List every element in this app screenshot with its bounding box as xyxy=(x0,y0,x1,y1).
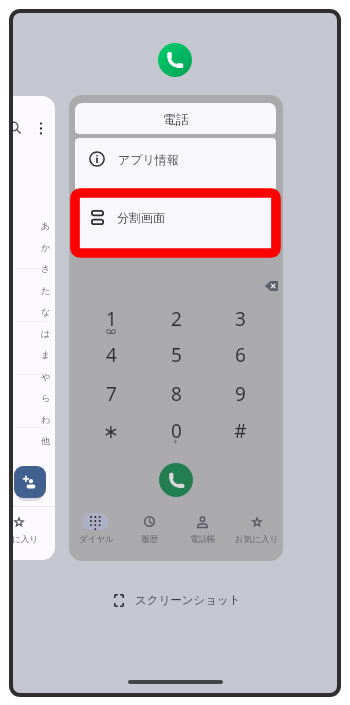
button[interactable]: スクリーンショット xyxy=(114,593,241,607)
staticText: 電話 xyxy=(163,111,189,127)
staticText: ら xyxy=(41,392,51,403)
button[interactable]: 3 xyxy=(216,301,264,337)
other: More options xyxy=(37,122,45,135)
staticText: 他 xyxy=(41,435,50,446)
staticText: 3 xyxy=(235,306,246,332)
staticText: に入り xyxy=(13,534,38,545)
button[interactable]: ∗ xyxy=(87,413,135,449)
staticText: アプリ情報 xyxy=(118,152,179,167)
staticText: 電話帳 xyxy=(190,534,216,545)
staticText: 1 xyxy=(106,306,117,332)
other: Search xyxy=(13,121,21,134)
button[interactable]: 6 xyxy=(216,337,264,373)
button[interactable]: Phone app xyxy=(158,43,192,77)
staticText: ダイヤル xyxy=(79,534,114,545)
button[interactable]: 4 xyxy=(87,337,135,373)
staticText: 6 xyxy=(235,342,246,368)
button[interactable] xyxy=(70,511,122,545)
staticText: ∗ xyxy=(103,420,119,442)
staticText: スクリーンショット xyxy=(135,593,241,607)
staticText: + xyxy=(173,436,178,447)
other: Backspace xyxy=(265,281,278,291)
staticText: 履歴 xyxy=(141,534,158,545)
button[interactable]: アプリ情報 xyxy=(75,138,276,191)
staticText: な xyxy=(41,306,51,317)
button[interactable]: # xyxy=(216,413,264,449)
staticText: 0 xyxy=(171,418,182,444)
button[interactable]: 7 xyxy=(87,376,135,412)
staticText: あ xyxy=(41,220,51,231)
staticText: か xyxy=(41,242,51,253)
staticText: 2 xyxy=(171,306,182,332)
staticText: # xyxy=(234,418,247,444)
staticText: 4 xyxy=(106,342,117,368)
staticText: お気に入り xyxy=(235,534,279,545)
button[interactable]: Call xyxy=(159,463,193,497)
button[interactable]: 5 xyxy=(152,337,200,373)
staticText: ま xyxy=(41,349,51,360)
button[interactable]: Add contact xyxy=(14,466,46,498)
button[interactable]: 1 xyxy=(87,301,135,337)
button[interactable]: 0 xyxy=(152,413,200,449)
button[interactable]: 2 xyxy=(152,301,200,337)
staticText: は xyxy=(41,328,51,339)
staticText: た xyxy=(41,285,51,296)
button[interactable] xyxy=(177,511,229,545)
staticText: わ xyxy=(41,414,51,425)
staticText: 5 xyxy=(171,342,182,368)
staticText: 9 xyxy=(235,381,246,407)
button[interactable]: 分割画面 xyxy=(75,193,276,253)
staticText: や xyxy=(41,371,51,382)
button[interactable] xyxy=(231,511,283,545)
button[interactable]: 8 xyxy=(152,376,200,412)
staticText: 8 xyxy=(171,381,182,407)
staticText: さ xyxy=(41,263,51,274)
button[interactable] xyxy=(123,511,175,545)
staticText: 7 xyxy=(106,381,117,407)
button[interactable]: 9 xyxy=(216,376,264,412)
staticText: 分割画面 xyxy=(117,210,165,225)
